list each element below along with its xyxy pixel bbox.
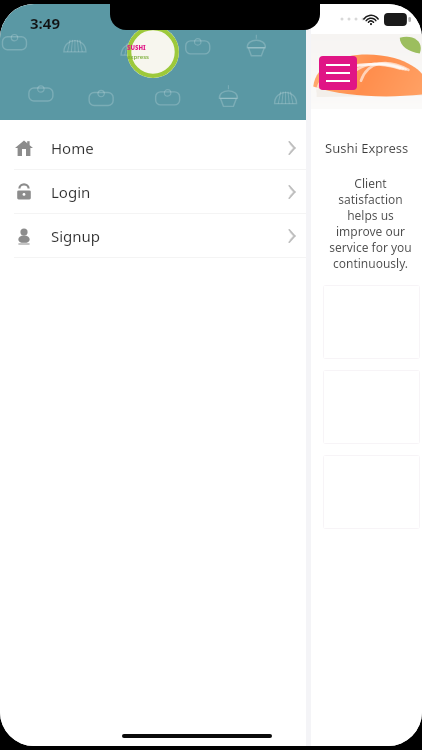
button[interactable]: Open navigation menu <box>319 56 357 90</box>
staticText: Home <box>51 138 292 158</box>
staticText: Client satisfaction helps us improve our… <box>323 175 418 271</box>
staticText: Sushi Express <box>325 139 422 157</box>
button[interactable]: Login <box>0 170 306 213</box>
button[interactable]: Signup <box>0 214 306 257</box>
staticText: Login <box>51 182 292 202</box>
staticText: express <box>127 53 179 61</box>
staticText: SUSHI <box>127 44 179 52</box>
staticText: Signup <box>51 226 292 246</box>
button[interactable]: Home <box>0 126 306 169</box>
staticText: 3:49 <box>30 13 422 33</box>
